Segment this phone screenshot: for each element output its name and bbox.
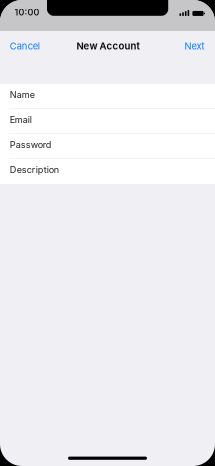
- staticText: 10:00: [14, 7, 39, 18]
- button[interactable]: Password: [0, 134, 215, 159]
- staticText: Name: [10, 89, 35, 100]
- button[interactable]: Description: [0, 159, 215, 184]
- button[interactable]: Name: [0, 84, 215, 109]
- staticText: New Account: [77, 40, 140, 52]
- staticText: Email: [10, 114, 32, 125]
- button[interactable]: Cancel: [0, 34, 60, 58]
- staticText: Password: [10, 139, 52, 150]
- button[interactable]: Email: [0, 109, 215, 134]
- staticText: Next: [184, 40, 204, 52]
- button[interactable]: Next: [155, 34, 215, 58]
- staticText: Description: [10, 164, 59, 175]
- staticText: Cancel: [10, 40, 40, 52]
